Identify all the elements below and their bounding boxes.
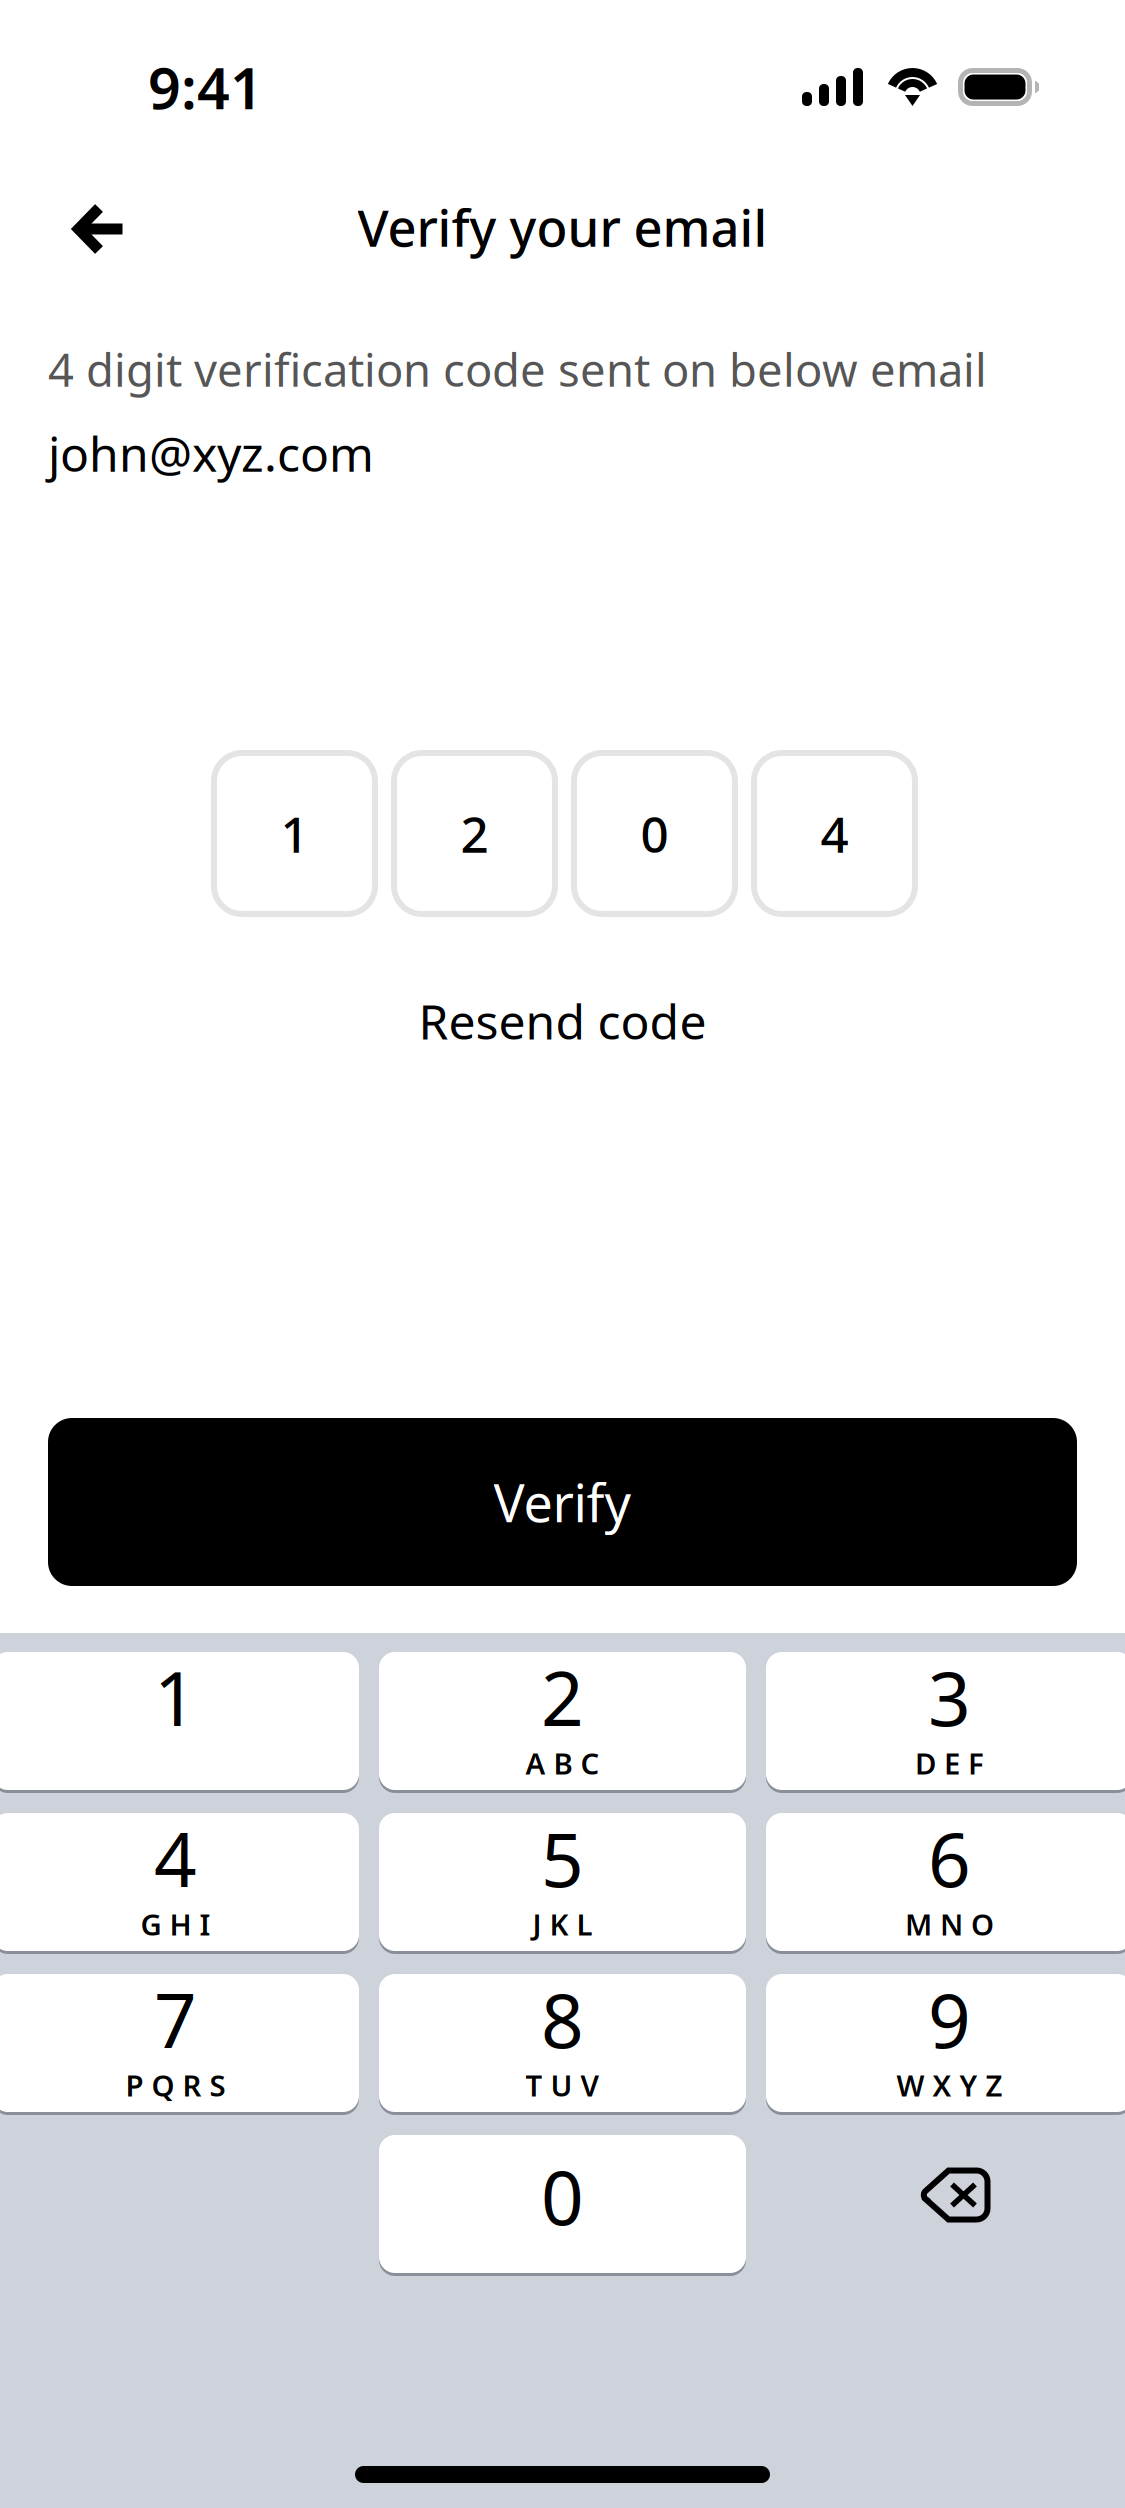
staticText: Verify [493, 1467, 631, 1537]
staticText: 6 [928, 1808, 971, 1908]
button[interactable]: Delete [766, 2135, 1125, 2273]
button[interactable]: 4 [751, 750, 918, 917]
button[interactable]: 4 [0, 1813, 359, 1951]
button[interactable]: 5 [379, 1813, 746, 1951]
staticText: 2 [541, 1647, 584, 1747]
staticText: J K L [532, 1904, 592, 1943]
button[interactable]: 2 [379, 1652, 746, 1790]
button[interactable]: Verify [48, 1418, 1077, 1586]
staticText: Resend code [418, 989, 706, 1053]
staticText: 8 [541, 1969, 584, 2069]
staticText: 1 [280, 801, 308, 866]
staticText: 2 [460, 801, 488, 866]
staticText: D E F [915, 1743, 984, 1782]
staticText: 7 [154, 1969, 197, 2069]
staticText: 9:41 [148, 49, 263, 125]
staticText: 0 [640, 801, 668, 866]
button[interactable]: 1 [0, 1652, 359, 1790]
button[interactable]: 1 [211, 750, 378, 917]
button[interactable]: 8 [379, 1974, 746, 2112]
staticText: G H I [140, 1904, 210, 1943]
staticText: 9 [928, 1969, 971, 2069]
staticText: 4 [820, 801, 848, 866]
staticText: 4 [154, 1808, 197, 1908]
staticText: W X Y Z [896, 2065, 1002, 2104]
staticText: M N O [905, 1904, 994, 1943]
staticText: john@xyz.com [48, 421, 374, 485]
button[interactable]: Back [45, 174, 155, 284]
button[interactable]: Resend code [388, 971, 736, 1071]
button[interactable]: 9 [766, 1974, 1125, 2112]
staticText: A B C [525, 1743, 599, 1782]
staticText: 5 [541, 1808, 584, 1908]
staticText: T U V [525, 2065, 599, 2104]
staticText: 1 [154, 1647, 197, 1747]
button[interactable]: 6 [766, 1813, 1125, 1951]
staticText: 3 [928, 1647, 971, 1747]
button[interactable]: 7 [0, 1974, 359, 2112]
staticText: 0 [541, 2146, 584, 2246]
button[interactable]: 2 [391, 750, 558, 917]
staticText: Verify your email [357, 193, 767, 261]
staticText: P Q R S [125, 2065, 225, 2104]
button[interactable]: 0 [379, 2135, 746, 2273]
staticText: 4 digit verification code sent on below … [48, 339, 987, 399]
button[interactable]: 0 [571, 750, 738, 917]
button[interactable]: 3 [766, 1652, 1125, 1790]
